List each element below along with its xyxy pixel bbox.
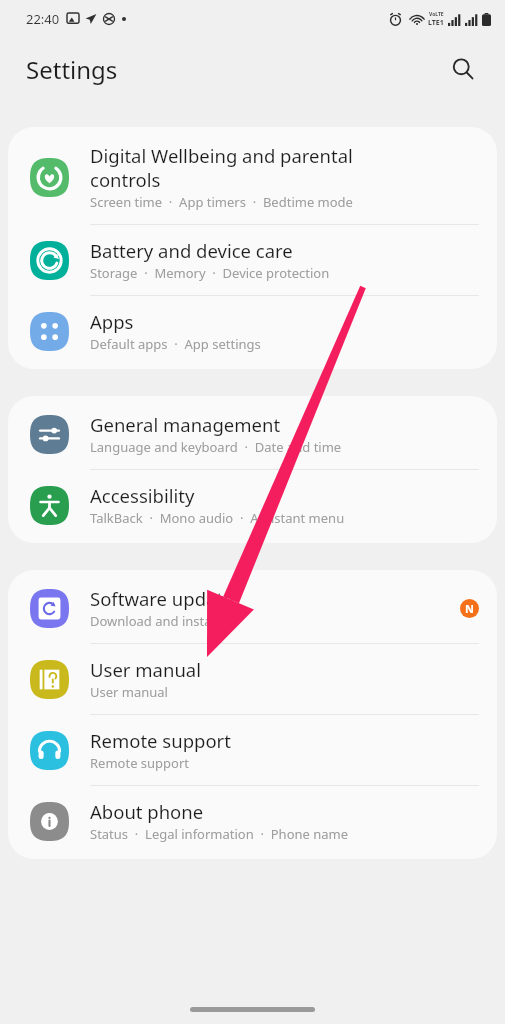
staticText: TalkBack · Mono audio · Assistant menu xyxy=(90,509,345,527)
button[interactable]: About phone xyxy=(8,786,497,856)
button[interactable]: Software update xyxy=(8,573,497,643)
staticText: Screen time · App timers · Bedtime mode xyxy=(90,193,353,211)
staticText: General management xyxy=(90,412,281,437)
staticText: Remote support xyxy=(90,728,231,753)
button[interactable]: Digital Wellbeing and parental controls xyxy=(8,130,497,224)
staticText: Language and keyboard · Date and time xyxy=(90,438,342,456)
staticText: VoLTE xyxy=(429,11,444,18)
button[interactable]: Accessibility xyxy=(8,470,497,540)
staticText: Remote support xyxy=(90,754,190,772)
staticText: About phone xyxy=(90,799,204,824)
staticText: Settings xyxy=(26,53,118,86)
staticText: Digital Wellbeing and parental controls xyxy=(90,143,353,192)
button[interactable]: Search xyxy=(443,49,483,89)
button[interactable]: User manual xyxy=(8,644,497,714)
button[interactable]: General management xyxy=(8,399,497,469)
staticText: Storage · Memory · Device protection xyxy=(90,264,330,282)
staticText: Battery and device care xyxy=(90,238,293,263)
staticText: Apps xyxy=(90,309,134,334)
button[interactable]: Battery and device care xyxy=(8,225,497,295)
button[interactable]: Remote support xyxy=(8,715,497,785)
staticText: User manual xyxy=(90,683,168,701)
staticText: Status · Legal information · Phone name xyxy=(90,825,349,843)
staticText: Software update xyxy=(90,586,234,611)
staticText: Default apps · App settings xyxy=(90,335,261,353)
staticText: N xyxy=(465,601,474,616)
staticText: Download and install xyxy=(90,612,219,630)
button[interactable]: Apps xyxy=(8,296,497,366)
staticText: LTE1 xyxy=(428,18,444,28)
staticText: User manual xyxy=(90,657,201,682)
staticText: Accessibility xyxy=(90,483,195,508)
staticText: 22:40 xyxy=(26,10,60,28)
